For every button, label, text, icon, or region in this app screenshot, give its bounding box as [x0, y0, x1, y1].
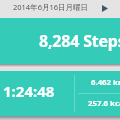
button[interactable]: 1:24:48: [0, 71, 75, 116]
staticText: 257.6 kcal: [88, 98, 120, 109]
staticText: 6.462 km: [91, 77, 120, 88]
staticText: 2014年6月16日月曜日: [13, 2, 89, 12]
staticText: 8,284 Steps: [39, 30, 120, 52]
button[interactable]: 6.462 km: [75, 71, 120, 116]
button[interactable]: Play: [97, 0, 113, 16]
staticText: 1:24:48: [3, 81, 55, 101]
button[interactable]: 8,284 Steps: [0, 18, 120, 64]
button[interactable]: 257.6 kcal: [75, 94, 120, 116]
